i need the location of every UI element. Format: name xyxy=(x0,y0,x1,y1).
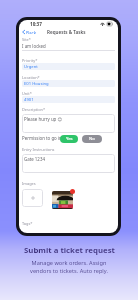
button[interactable]: E01 Housing xyxy=(22,80,115,87)
staticText: Permission to go in xyxy=(22,135,62,141)
button[interactable]: Gate 1234 xyxy=(22,154,115,173)
button[interactable]: Add image xyxy=(22,189,43,207)
staticText: 10:37 xyxy=(30,21,42,27)
button[interactable]: Urgent xyxy=(22,63,115,70)
staticText: E01 Housing xyxy=(24,81,49,87)
button[interactable]: Yes xyxy=(60,135,78,143)
button[interactable]: Remove image xyxy=(70,189,75,194)
staticText: Priority* xyxy=(22,58,38,63)
staticText: Images xyxy=(22,181,36,186)
staticText: Please hurry up 😊 xyxy=(24,116,63,122)
staticText: Unit* xyxy=(22,91,32,96)
staticText: No xyxy=(89,136,95,142)
staticText: Site* xyxy=(22,37,31,42)
staticText: I am locked xyxy=(22,43,46,49)
staticText: Urgent xyxy=(24,64,38,70)
button[interactable]: Back xyxy=(21,29,38,35)
staticText: Requests & Tasks xyxy=(47,29,86,35)
staticText: Gate 1234 xyxy=(24,156,45,162)
staticText: Location* xyxy=(22,75,40,80)
button[interactable]: Please hurry up 😊 xyxy=(22,114,115,133)
staticText: Manage work orders. Assign vendors to ti… xyxy=(30,259,108,275)
staticText: Back xyxy=(26,30,37,34)
staticText: Tags* xyxy=(22,221,33,226)
staticText: Entry Instructions xyxy=(22,147,55,152)
staticText: 4901 xyxy=(24,97,34,103)
staticText: Description* xyxy=(22,107,46,112)
staticText: Submit a ticket request xyxy=(24,245,115,256)
staticText: Yes xyxy=(66,136,73,142)
button[interactable]: 4901 xyxy=(22,96,115,103)
button[interactable]: No xyxy=(82,135,102,143)
